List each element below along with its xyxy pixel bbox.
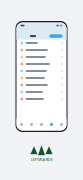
button[interactable]: [16, 39, 66, 46]
button[interactable]: Tab 2: [26, 118, 36, 130]
button[interactable]: Tab 3: [36, 118, 46, 130]
button[interactable]: [16, 53, 66, 60]
button[interactable]: Tab 1: [16, 118, 26, 130]
button[interactable]: [16, 95, 66, 102]
button[interactable]: Tab 5: [56, 118, 66, 130]
button[interactable]: [16, 88, 66, 95]
staticText: LEFTWARDS: [30, 157, 52, 162]
button[interactable]: [16, 46, 66, 53]
button[interactable]: [16, 60, 66, 67]
button[interactable]: [49, 34, 62, 38]
button[interactable]: [16, 74, 66, 81]
button[interactable]: Tab 4: [46, 118, 56, 130]
button[interactable]: [16, 81, 66, 88]
button[interactable]: [16, 67, 66, 74]
